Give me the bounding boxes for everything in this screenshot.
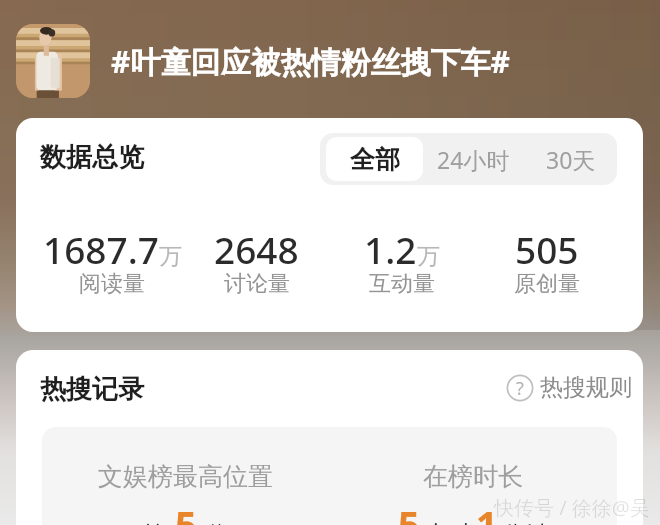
staticText: 在榜时长 bbox=[423, 461, 523, 492]
button[interactable]: 30天 bbox=[524, 133, 617, 185]
staticText: 小时 bbox=[423, 520, 471, 525]
staticText: 热搜记录 bbox=[40, 373, 144, 406]
staticText: 5 bbox=[175, 498, 197, 525]
staticText: 2648 bbox=[214, 224, 299, 274]
staticText: 5 bbox=[398, 498, 420, 525]
button[interactable]: 24小时 bbox=[423, 133, 524, 185]
button[interactable]: Avatar bbox=[16, 24, 90, 98]
button[interactable]: 全部 bbox=[326, 137, 423, 181]
staticText: 1687.7 bbox=[43, 224, 159, 274]
staticText: 数据总览 bbox=[40, 141, 144, 174]
staticText: 30天 bbox=[546, 144, 596, 175]
staticText: 文娱榜最高位置 bbox=[98, 461, 273, 492]
staticText: 505 bbox=[515, 224, 579, 274]
button[interactable]: 热搜规则 bbox=[506, 373, 632, 402]
staticText: 原创量 bbox=[514, 270, 580, 298]
staticText: 位 bbox=[206, 520, 230, 525]
staticText: 万 bbox=[417, 242, 440, 271]
staticText: 讨论量 bbox=[224, 270, 290, 298]
staticText: 分钟 bbox=[501, 520, 549, 525]
staticText: 24小时 bbox=[437, 144, 510, 175]
staticText: 互动量 bbox=[369, 270, 435, 298]
staticText: 1 bbox=[476, 498, 498, 525]
staticText: 热搜规则 bbox=[540, 373, 632, 402]
button[interactable]: #叶童回应被热情粉丝拽下车# bbox=[105, 32, 504, 88]
staticText: 阅读量 bbox=[79, 270, 145, 298]
staticText: #叶童回应被热情粉丝拽下车# bbox=[111, 41, 510, 82]
staticText: ? bbox=[516, 376, 524, 401]
staticText: 第 bbox=[142, 520, 166, 525]
staticText: 万 bbox=[159, 242, 182, 271]
staticText: 1.2 bbox=[364, 224, 417, 274]
staticText: 快传号 / 徐徐@吴 bbox=[494, 494, 650, 521]
staticText: 全部 bbox=[350, 144, 400, 175]
